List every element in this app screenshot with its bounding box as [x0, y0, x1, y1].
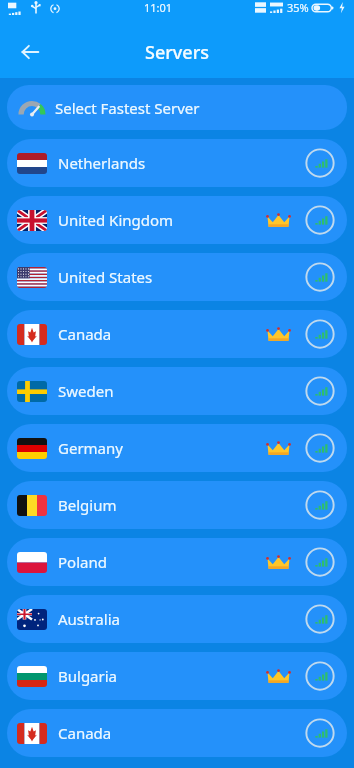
staticText: Belgium	[58, 495, 117, 515]
staticText: Canada	[58, 324, 112, 344]
button[interactable]: Canada	[7, 709, 347, 757]
staticText: Select Fastest Server	[55, 98, 200, 118]
button[interactable]: Belgium	[7, 481, 347, 529]
button[interactable]: Canada	[7, 310, 347, 358]
staticText: United Kingdom	[58, 210, 174, 230]
button[interactable]: United Kingdom	[7, 196, 347, 244]
staticText: United States	[58, 267, 153, 287]
staticText: Canada	[58, 723, 112, 743]
staticText: Australia	[58, 609, 120, 629]
button[interactable]: Germany	[7, 424, 347, 472]
button[interactable]: Australia	[7, 595, 347, 643]
button[interactable]: Sweden	[7, 367, 347, 415]
button[interactable]: Netherlands	[7, 139, 347, 187]
staticText: Bulgaria	[58, 666, 118, 686]
staticText: 35%	[287, 0, 309, 15]
button[interactable]: Back	[10, 32, 50, 72]
staticText: Servers	[145, 40, 210, 65]
button[interactable]: Select Fastest Server	[7, 85, 347, 130]
staticText: Netherlands	[58, 153, 146, 173]
staticText: 11:01	[144, 0, 173, 15]
staticText: Germany	[58, 438, 123, 458]
button[interactable]: Bulgaria	[7, 652, 347, 700]
staticText: Poland	[58, 552, 107, 572]
button[interactable]: United States	[7, 253, 347, 301]
button[interactable]: Poland	[7, 538, 347, 586]
staticText: Sweden	[58, 381, 114, 401]
